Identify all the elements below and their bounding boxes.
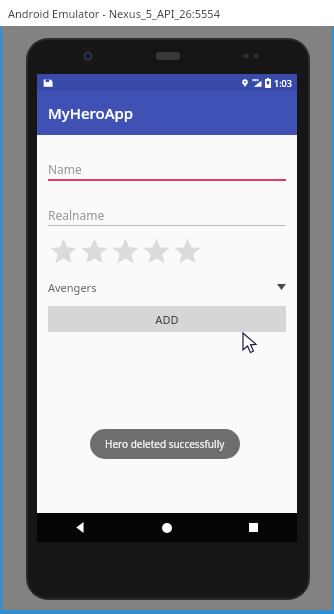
staticText: Android Emulator - Nexus_5_API_26:5554 xyxy=(8,6,220,21)
button[interactable]: Recent apps xyxy=(210,513,297,542)
staticText: Hero deleted successfully xyxy=(105,437,225,451)
button[interactable]: Rating star 3 xyxy=(110,236,141,266)
button[interactable]: Rating star 2 xyxy=(79,236,110,266)
button[interactable]: Realname xyxy=(48,204,286,225)
staticText: Realname xyxy=(48,207,105,223)
button[interactable]: Rating star 4 xyxy=(141,236,172,266)
staticText: MyHeroApp xyxy=(48,103,134,123)
staticText: 1:03 xyxy=(274,77,292,89)
button[interactable]: ADD xyxy=(48,306,286,332)
staticText: Avengers xyxy=(48,280,97,295)
button[interactable]: Name xyxy=(48,158,286,179)
staticText: ADD xyxy=(155,312,179,327)
button[interactable]: Rating star 5 xyxy=(172,236,203,266)
staticText: Name xyxy=(48,161,82,177)
button[interactable]: Home xyxy=(123,513,210,542)
button[interactable]: Avengers xyxy=(48,274,286,300)
button[interactable]: Rating star 1 xyxy=(48,236,79,266)
button[interactable]: Back xyxy=(37,513,123,542)
